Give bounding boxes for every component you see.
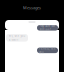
staticText: Hey! Are we still on?	[39, 24, 55, 31]
staticText: Yes, see you at seven	[8, 34, 25, 41]
staticText: Perfect, see you	[39, 47, 56, 54]
staticText: Messages	[23, 5, 41, 10]
